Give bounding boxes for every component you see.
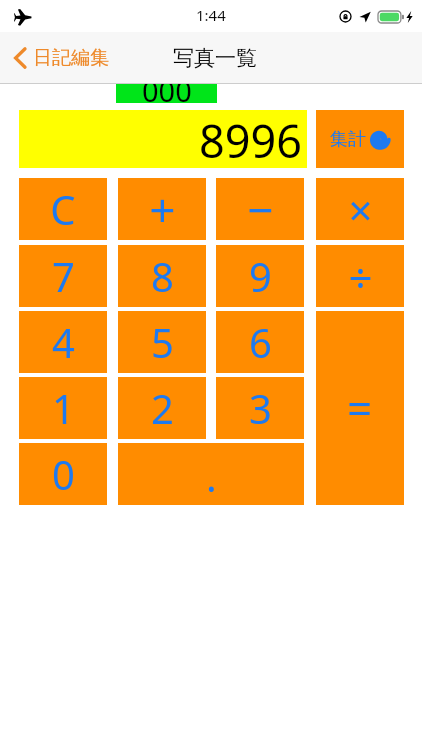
- button[interactable]: 日記編集: [10, 40, 113, 76]
- button[interactable]: 4: [19, 311, 107, 373]
- staticText: 9: [249, 249, 272, 303]
- staticText: =: [347, 378, 373, 438]
- button[interactable]: 0: [19, 443, 107, 505]
- staticText: 8: [151, 249, 174, 303]
- button[interactable]: C: [19, 178, 107, 240]
- button[interactable]: 5: [118, 311, 206, 373]
- button[interactable]: −: [216, 178, 304, 240]
- staticText: 3: [249, 381, 272, 435]
- button[interactable]: 集計: [316, 110, 404, 168]
- button[interactable]: 8: [118, 245, 206, 307]
- staticText: 0: [52, 447, 75, 501]
- staticText: 1:44: [196, 5, 226, 25]
- staticText: 7: [52, 249, 75, 303]
- button[interactable]: ×: [316, 178, 404, 240]
- staticText: 集計: [330, 128, 366, 151]
- staticText: 8996: [199, 110, 302, 168]
- staticText: C: [50, 182, 76, 236]
- button[interactable]: 2: [118, 377, 206, 439]
- staticText: 2: [151, 381, 174, 435]
- staticText: 1: [52, 381, 75, 435]
- button[interactable]: 6: [216, 311, 304, 373]
- button[interactable]: 7: [19, 245, 107, 307]
- staticText: 6: [249, 315, 272, 369]
- button[interactable]: 9: [216, 245, 304, 307]
- staticText: +: [149, 178, 176, 240]
- staticText: 4: [52, 315, 75, 369]
- staticText: −: [247, 178, 274, 240]
- button[interactable]: 3: [216, 377, 304, 439]
- staticText: 000: [142, 71, 192, 103]
- staticText: 5: [151, 315, 174, 369]
- staticText: 日記編集: [33, 46, 109, 70]
- button[interactable]: 1: [19, 377, 107, 439]
- button[interactable]: ÷: [316, 245, 404, 307]
- button[interactable]: =: [316, 311, 404, 505]
- staticText: ÷: [348, 248, 373, 305]
- button[interactable]: .: [118, 443, 304, 505]
- staticText: .: [206, 449, 217, 503]
- staticText: ×: [348, 181, 373, 238]
- button[interactable]: +: [118, 178, 206, 240]
- staticText: 写真一覧: [173, 45, 257, 71]
